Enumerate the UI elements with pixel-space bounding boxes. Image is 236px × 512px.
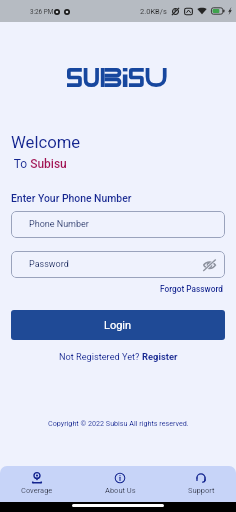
button[interactable]: About Us (86, 466, 154, 495)
button[interactable]: Not Registered Yet? (59, 351, 178, 362)
staticText: 2.0KB/s (140, 7, 167, 16)
staticText: Password (29, 259, 69, 270)
staticText: Forgot Password (160, 284, 223, 294)
button[interactable]: Show password (201, 257, 217, 273)
staticText: Register (142, 351, 178, 362)
staticText: Copyright © 2022 Subisu All rights reser… (48, 419, 189, 427)
button[interactable]: Login (11, 310, 225, 340)
staticText: Phone Number (29, 219, 89, 230)
button[interactable]: Forgot Password (158, 283, 225, 295)
staticText: About Us (105, 486, 136, 495)
staticText: Enter Your Phone Number (11, 192, 132, 204)
staticText: Support (188, 486, 215, 495)
button[interactable]: Phone Number (11, 211, 225, 238)
staticText: Welcome (11, 133, 81, 153)
staticText: 3:26 PM (30, 8, 54, 15)
button[interactable]: Support (167, 466, 235, 495)
button[interactable]: Password (11, 251, 225, 278)
staticText: Login (104, 319, 132, 332)
staticText: To Subisu (11, 157, 67, 171)
button[interactable]: Coverage (3, 466, 71, 495)
staticText: Not Registered Yet? (59, 351, 142, 362)
staticText: Coverage (21, 486, 53, 495)
